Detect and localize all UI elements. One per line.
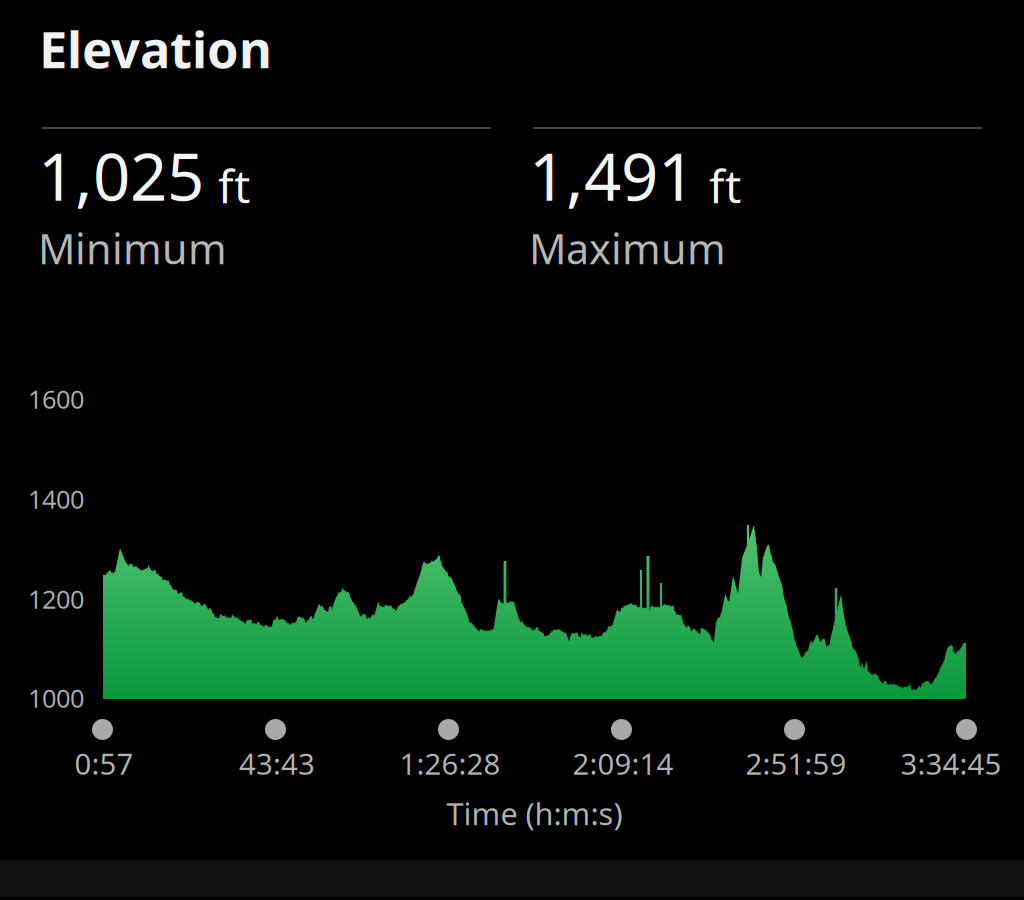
button[interactable]: Elevation chart: [103, 349, 966, 699]
staticText: Elevation: [39, 15, 272, 82]
button[interactable]: 1,025: [38, 119, 487, 276]
staticText: Minimum: [38, 221, 227, 276]
staticText: Maximum: [529, 221, 726, 276]
staticText: 1600: [28, 382, 84, 416]
staticText: 3:34:45: [900, 744, 1001, 783]
staticText: 2:51:59: [745, 744, 846, 783]
staticText: 1200: [28, 582, 84, 616]
staticText: 1,491: [529, 132, 695, 219]
staticText: ft: [218, 156, 250, 216]
staticText: 43:43: [239, 744, 315, 783]
staticText: 1000: [28, 681, 84, 715]
staticText: 1:26:28: [399, 744, 500, 783]
staticText: 0:57: [74, 744, 133, 783]
button[interactable]: 1,491: [529, 119, 978, 276]
staticText: 1,025: [38, 132, 204, 219]
staticText: ft: [709, 156, 741, 216]
staticText: 1400: [28, 482, 84, 516]
staticText: Time (h:m:s): [446, 793, 622, 834]
staticText: 2:09:14: [572, 744, 673, 783]
